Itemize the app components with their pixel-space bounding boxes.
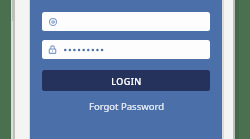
button[interactable]: Password	[42, 40, 210, 59]
button[interactable]: Forgot Password	[42, 99, 210, 113]
button[interactable]: LOGIN	[42, 70, 210, 91]
staticText: LOGIN	[111, 75, 142, 87]
other: Password	[49, 45, 56, 54]
staticText: Forgot Password	[89, 100, 164, 113]
button[interactable]: Email	[42, 12, 210, 31]
other: Email	[49, 18, 57, 26]
